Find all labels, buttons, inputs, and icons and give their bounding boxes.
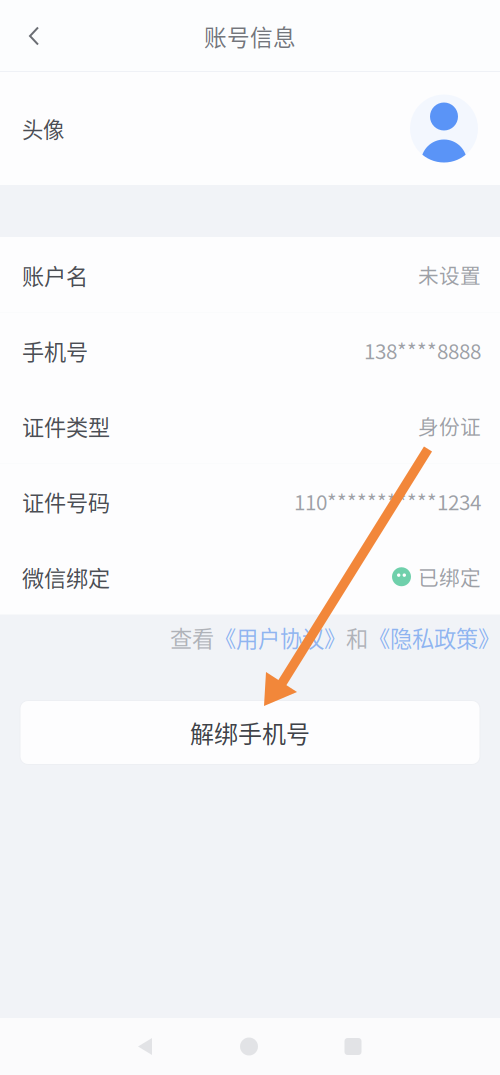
staticText: 微信绑定 [22, 561, 110, 593]
staticText: 解绑手机号 [190, 715, 310, 750]
button[interactable]: Recent apps [301, 1018, 405, 1075]
staticText: 手机号 [22, 334, 88, 366]
button[interactable]: 手机号 [0, 312, 500, 388]
staticText: 账户名 [22, 259, 88, 291]
button[interactable]: Back [93, 1018, 197, 1075]
button[interactable]: 头像 [0, 72, 500, 185]
button[interactable]: 账户名 [0, 237, 500, 312]
staticText: 已绑定 [418, 562, 481, 592]
staticText: 《隐私政策》 [368, 621, 500, 654]
button[interactable]: Back [0, 0, 68, 72]
button[interactable]: 查看 [170, 618, 500, 656]
staticText: 查看 [170, 621, 214, 654]
staticText: 身份证 [418, 411, 481, 441]
staticText: 110***********1234 [294, 486, 481, 516]
staticText: 138****8888 [364, 335, 481, 365]
staticText: 证件号码 [22, 485, 110, 517]
button[interactable]: 解绑手机号 [20, 700, 480, 764]
button[interactable]: 微信绑定 [0, 539, 500, 614]
staticText: 《用户协议》 [214, 621, 346, 654]
button[interactable]: Home [197, 1018, 301, 1075]
button[interactable]: 证件类型 [0, 388, 500, 463]
staticText: 未设置 [418, 260, 481, 290]
button[interactable]: 证件号码 [0, 463, 500, 539]
staticText: 头像 [22, 113, 64, 144]
staticText: 证件类型 [22, 410, 110, 442]
staticText: 和 [346, 621, 368, 654]
staticText: 账号信息 [204, 20, 296, 52]
